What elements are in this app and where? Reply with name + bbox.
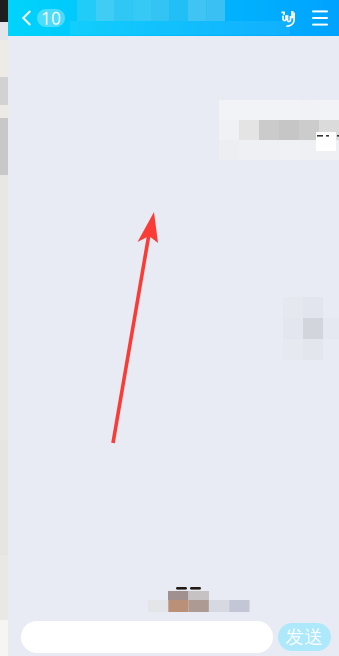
staticText: 10: [41, 6, 61, 29]
staticText: 发送: [285, 625, 323, 648]
button[interactable]: Menu: [304, 0, 336, 36]
button[interactable]: Message input field: [21, 621, 273, 653]
button[interactable]: Back: [8, 0, 71, 36]
button[interactable]: 发送: [278, 623, 331, 651]
button[interactable]: Sign language input: [273, 0, 304, 36]
